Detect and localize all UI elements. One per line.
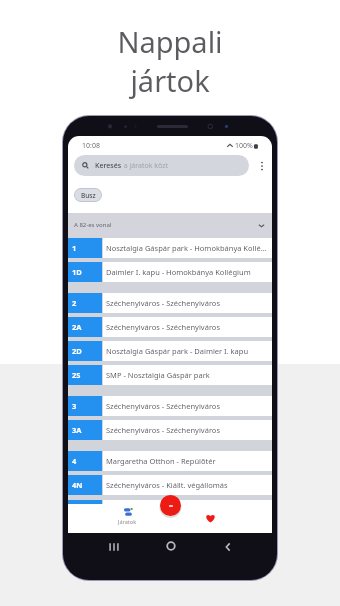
button[interactable]: 4: [68, 451, 272, 471]
button[interactable]: 2S: [68, 365, 272, 385]
staticText: 3A: [72, 425, 82, 435]
staticText: Daimler I. kapu - Homokbánya Kollégium: [106, 267, 251, 277]
staticText: Széchenyiváros - Széchenyiváros: [106, 298, 220, 308]
button[interactable]: 2D: [68, 341, 272, 361]
staticText: Széchenyiváros - Széchenyiváros: [106, 425, 220, 435]
staticText: Nappali: [117, 22, 223, 61]
button[interactable]: Járatok: [105, 507, 150, 525]
staticText: 4N: [72, 480, 83, 490]
button[interactable]: 3A: [68, 420, 272, 440]
button[interactable]: A 82-es vonal: [68, 213, 272, 237]
staticText: Széchenyiváros - Széchenyiváros: [106, 322, 220, 332]
button[interactable]: 3: [68, 396, 272, 416]
staticText: Nosztalgia Gáspár park - Daimler I. kapu: [106, 346, 249, 356]
staticText: Széchenyiváros - Kiállt. végállomás: [106, 480, 228, 490]
staticText: Keresés: [95, 161, 122, 171]
staticText: 1D: [72, 267, 82, 277]
staticText: Margaretha Otthon - Repülőtér: [106, 456, 216, 466]
button[interactable]: 4N: [68, 475, 272, 495]
button[interactable]: Keresés: [74, 155, 249, 176]
staticText: Busz: [81, 191, 96, 200]
button[interactable]: 1: [68, 238, 272, 258]
staticText: 2: [72, 298, 77, 308]
staticText: a járatok közt: [122, 161, 169, 171]
staticText: jártok: [130, 61, 210, 100]
staticText: SMP - Nosztalgia Gáspár park: [106, 370, 210, 380]
staticText: 1: [72, 243, 77, 253]
button[interactable]: Home: [164, 539, 178, 553]
staticText: 4: [72, 456, 77, 466]
staticText: Járatok: [118, 518, 137, 525]
staticText: 2A: [72, 322, 82, 332]
button[interactable]: Back: [221, 540, 235, 554]
staticText: 2D: [72, 346, 82, 356]
button[interactable]: More options: [256, 158, 268, 174]
button[interactable]: 2A: [68, 317, 272, 337]
button[interactable]: Recents: [107, 540, 121, 554]
button[interactable]: Favourites: [200, 508, 220, 528]
button[interactable]: Busz: [74, 188, 102, 202]
button[interactable]: Add: [160, 495, 181, 516]
staticText: Nosztalgia Gáspár park - Homokbánya Koll…: [106, 243, 269, 253]
staticText: 2S: [72, 370, 81, 380]
staticText: 100%: [235, 141, 253, 151]
staticText: A 82-es vonal: [74, 221, 112, 229]
button[interactable]: 2: [68, 293, 272, 313]
staticText: Széchenyiváros - Széchenyiváros: [106, 401, 220, 411]
staticText: 10:08: [82, 141, 100, 151]
staticText: 3: [72, 401, 77, 411]
button[interactable]: 1D: [68, 262, 272, 282]
